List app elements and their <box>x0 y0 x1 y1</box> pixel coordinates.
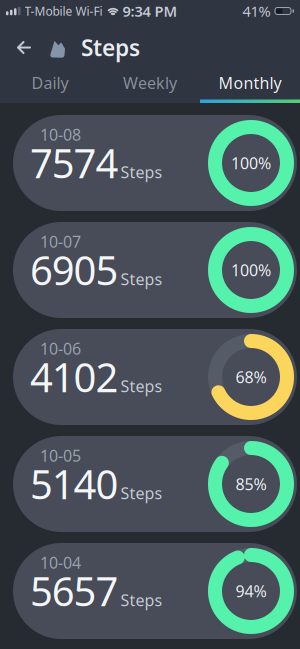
button[interactable]: Monthly <box>200 66 300 99</box>
staticText: 7574 <box>30 136 118 189</box>
staticText: 100% <box>231 152 271 174</box>
staticText: 85% <box>235 473 266 495</box>
button[interactable]: 10-08 <box>0 115 300 211</box>
button[interactable]: Daily <box>0 66 100 99</box>
staticText: 5140 <box>30 457 118 510</box>
staticText: Steps <box>120 482 162 504</box>
staticText: 100% <box>231 259 271 281</box>
staticText: Daily <box>31 72 68 93</box>
staticText: 94% <box>235 580 266 602</box>
button[interactable]: 10-07 <box>0 222 300 318</box>
staticText: Steps <box>120 375 162 397</box>
staticText: 10-05 <box>40 445 81 466</box>
staticText: 10-08 <box>40 124 81 145</box>
staticText: Steps <box>120 268 162 290</box>
staticText: 5657 <box>30 564 118 617</box>
staticText: 4102 <box>30 350 118 403</box>
staticText: 10-04 <box>40 552 81 573</box>
staticText: 6905 <box>30 243 118 296</box>
staticText: Steps <box>120 589 162 611</box>
staticText: Weekly <box>123 72 177 93</box>
button[interactable]: Back <box>0 26 40 68</box>
button[interactable]: 10-05 <box>0 436 300 532</box>
staticText: Steps <box>120 161 162 183</box>
button[interactable]: 10-06 <box>0 329 300 425</box>
staticText: 10-07 <box>40 231 81 252</box>
button[interactable]: Weekly <box>100 66 200 99</box>
staticText: 68% <box>235 366 266 388</box>
staticText: T-Mobile Wi-Fi <box>24 3 102 19</box>
staticText: 10-06 <box>40 338 81 359</box>
button[interactable]: 10-04 <box>0 543 300 639</box>
staticText: 9:34 PM <box>122 1 177 21</box>
staticText: Monthly <box>218 72 281 93</box>
staticText: 41% <box>242 1 270 21</box>
staticText: Steps <box>81 32 140 62</box>
